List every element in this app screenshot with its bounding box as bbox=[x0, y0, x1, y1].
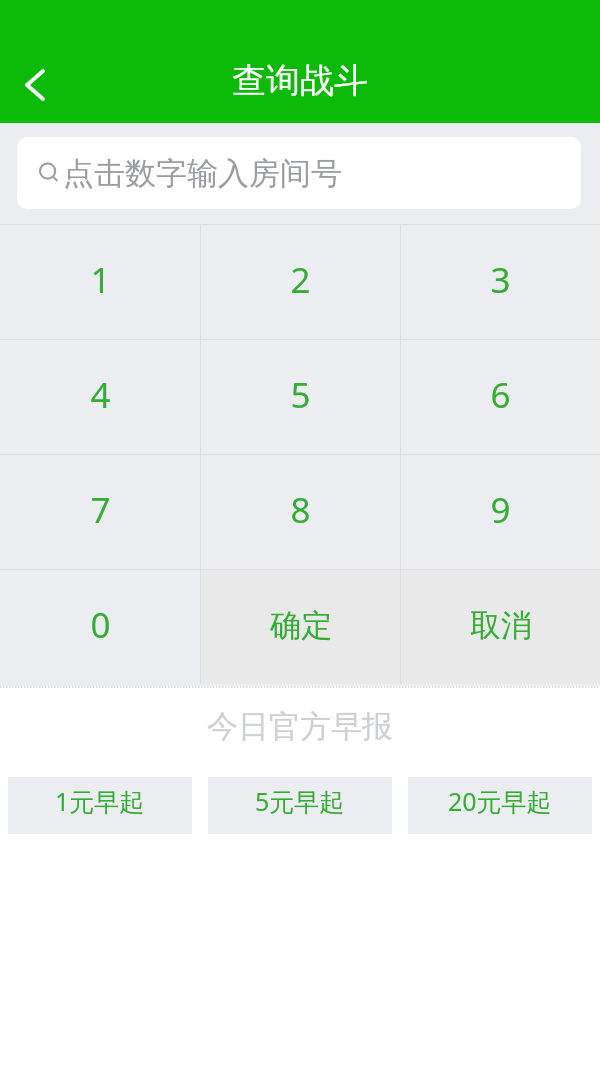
button[interactable]: 4 bbox=[0, 340, 200, 454]
staticText: 20元早起 bbox=[448, 784, 552, 818]
staticText: 今日官方早报 bbox=[207, 707, 393, 746]
staticText: 2 bbox=[290, 256, 311, 304]
staticText: 点击数字输入房间号 bbox=[63, 154, 342, 193]
staticText: 6 bbox=[490, 371, 511, 419]
staticText: 查询战斗 bbox=[232, 59, 368, 102]
button[interactable]: 5 bbox=[201, 340, 400, 454]
button[interactable]: 2 bbox=[201, 225, 400, 339]
staticText: 3 bbox=[490, 256, 511, 304]
button[interactable]: 5元早起 bbox=[208, 777, 392, 834]
button[interactable]: 点击数字输入房间号 bbox=[17, 137, 581, 209]
staticText: 7 bbox=[90, 486, 111, 534]
staticText: 确定 bbox=[270, 606, 332, 645]
button[interactable]: 确定 bbox=[201, 570, 400, 684]
button[interactable]: 7 bbox=[0, 455, 200, 569]
button[interactable]: 20元早起 bbox=[408, 777, 592, 834]
staticText: 1 bbox=[90, 256, 111, 304]
button[interactable]: 9 bbox=[401, 455, 600, 569]
button[interactable]: 1元早起 bbox=[8, 777, 192, 834]
button[interactable]: 1 bbox=[0, 225, 200, 339]
button[interactable]: Back bbox=[4, 54, 66, 116]
staticText: 0 bbox=[90, 601, 111, 649]
button[interactable]: 取消 bbox=[401, 570, 600, 684]
staticText: 1元早起 bbox=[55, 784, 145, 818]
button[interactable]: 6 bbox=[401, 340, 600, 454]
staticText: 取消 bbox=[470, 606, 532, 645]
button[interactable]: 8 bbox=[201, 455, 400, 569]
staticText: 9 bbox=[490, 486, 511, 534]
staticText: 5 bbox=[290, 371, 311, 419]
button[interactable]: 3 bbox=[401, 225, 600, 339]
staticText: 8 bbox=[290, 486, 311, 534]
staticText: 4 bbox=[90, 371, 111, 419]
button[interactable]: 0 bbox=[0, 570, 200, 684]
staticText: 5元早起 bbox=[255, 784, 345, 818]
